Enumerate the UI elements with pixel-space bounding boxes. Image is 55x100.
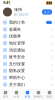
- staticText: 优惠券: [9, 34, 21, 39]
- staticText: ›: [51, 82, 52, 87]
- staticText: 张伟: [14, 7, 22, 12]
- button[interactable]: 优惠券: [0, 33, 55, 40]
- button[interactable]: 收藏夹: [0, 26, 55, 33]
- staticText: ›: [51, 34, 52, 39]
- staticText: ›: [51, 54, 52, 60]
- button[interactable]: 发现: [22, 89, 33, 100]
- staticText: 地址管理: [9, 41, 25, 46]
- button[interactable]: 账号安全: [0, 53, 55, 60]
- staticText: 分类: [13, 95, 19, 98]
- button[interactable]: 支付设置: [0, 60, 55, 67]
- staticText: 购物车: [34, 95, 43, 98]
- button[interactable]: 帮助中心: [0, 74, 55, 81]
- staticText: 我的: [46, 95, 52, 98]
- staticText: 帮助中心: [9, 75, 25, 80]
- staticText: ›: [51, 68, 52, 73]
- staticText: 支付设置: [9, 61, 25, 66]
- staticText: 9:41: [3, 0, 10, 5]
- staticText: ›: [51, 27, 52, 32]
- button[interactable]: 隐私设置: [0, 67, 55, 74]
- button[interactable]: 我的订单: [0, 19, 55, 26]
- staticText: ›: [51, 61, 52, 66]
- staticText: ›: [51, 75, 52, 80]
- button[interactable]: 我的: [44, 89, 55, 100]
- button[interactable]: 购物车: [33, 89, 44, 100]
- button[interactable]: 关于我们: [0, 81, 55, 88]
- button[interactable]: 分类: [11, 89, 22, 100]
- staticText: 消息通知: [9, 48, 25, 52]
- staticText: ID: 88231: [14, 13, 29, 17]
- staticText: ▮▮▮: [46, 0, 52, 5]
- staticText: 隐私设置: [9, 68, 25, 73]
- staticText: 首页: [2, 95, 8, 98]
- staticText: 关于我们: [9, 82, 25, 87]
- staticText: 会员: [44, 10, 50, 14]
- staticText: 我的订单: [9, 20, 25, 25]
- staticText: ›: [51, 40, 52, 46]
- staticText: 发现: [24, 95, 30, 98]
- button[interactable]: 消息通知: [0, 47, 55, 53]
- staticText: 账号安全: [9, 54, 25, 59]
- staticText: ›: [51, 47, 52, 53]
- button[interactable]: 地址管理: [0, 40, 55, 47]
- staticText: 收藏夹: [9, 27, 21, 32]
- button[interactable]: 首页: [0, 89, 11, 100]
